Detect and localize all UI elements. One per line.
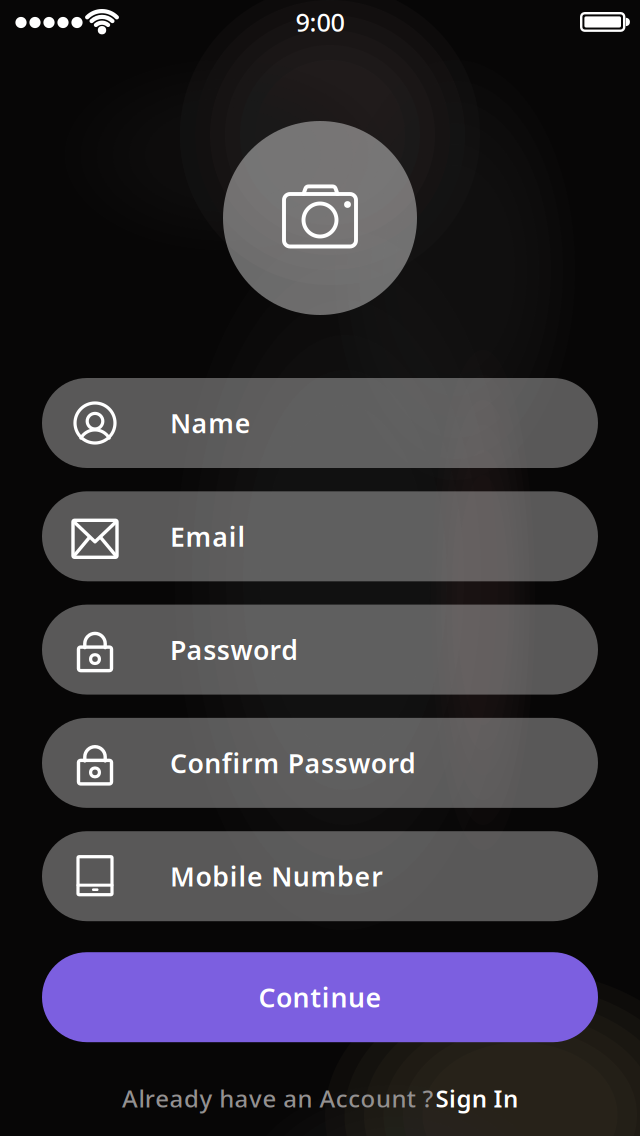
button[interactable]: Add profile photo bbox=[223, 121, 417, 315]
button[interactable]: Sign In bbox=[436, 1082, 518, 1114]
button[interactable]: Confirm Password bbox=[42, 718, 598, 808]
button[interactable]: Mobile Number bbox=[42, 831, 598, 921]
staticText: Password bbox=[170, 632, 298, 667]
staticText: Already have an Account ? bbox=[122, 1082, 434, 1114]
button[interactable]: Email bbox=[42, 491, 598, 581]
staticText: Confirm Password bbox=[170, 745, 416, 781]
button[interactable]: Name bbox=[42, 378, 598, 468]
staticText: Continue bbox=[258, 979, 382, 1015]
staticText: Mobile Number bbox=[170, 858, 383, 894]
staticText: Email bbox=[170, 519, 245, 554]
button[interactable]: Continue bbox=[42, 952, 598, 1042]
staticText: Sign In bbox=[436, 1082, 518, 1114]
staticText: 9:00 bbox=[295, 5, 344, 39]
button[interactable]: Password bbox=[42, 605, 598, 695]
staticText: Name bbox=[170, 405, 251, 441]
